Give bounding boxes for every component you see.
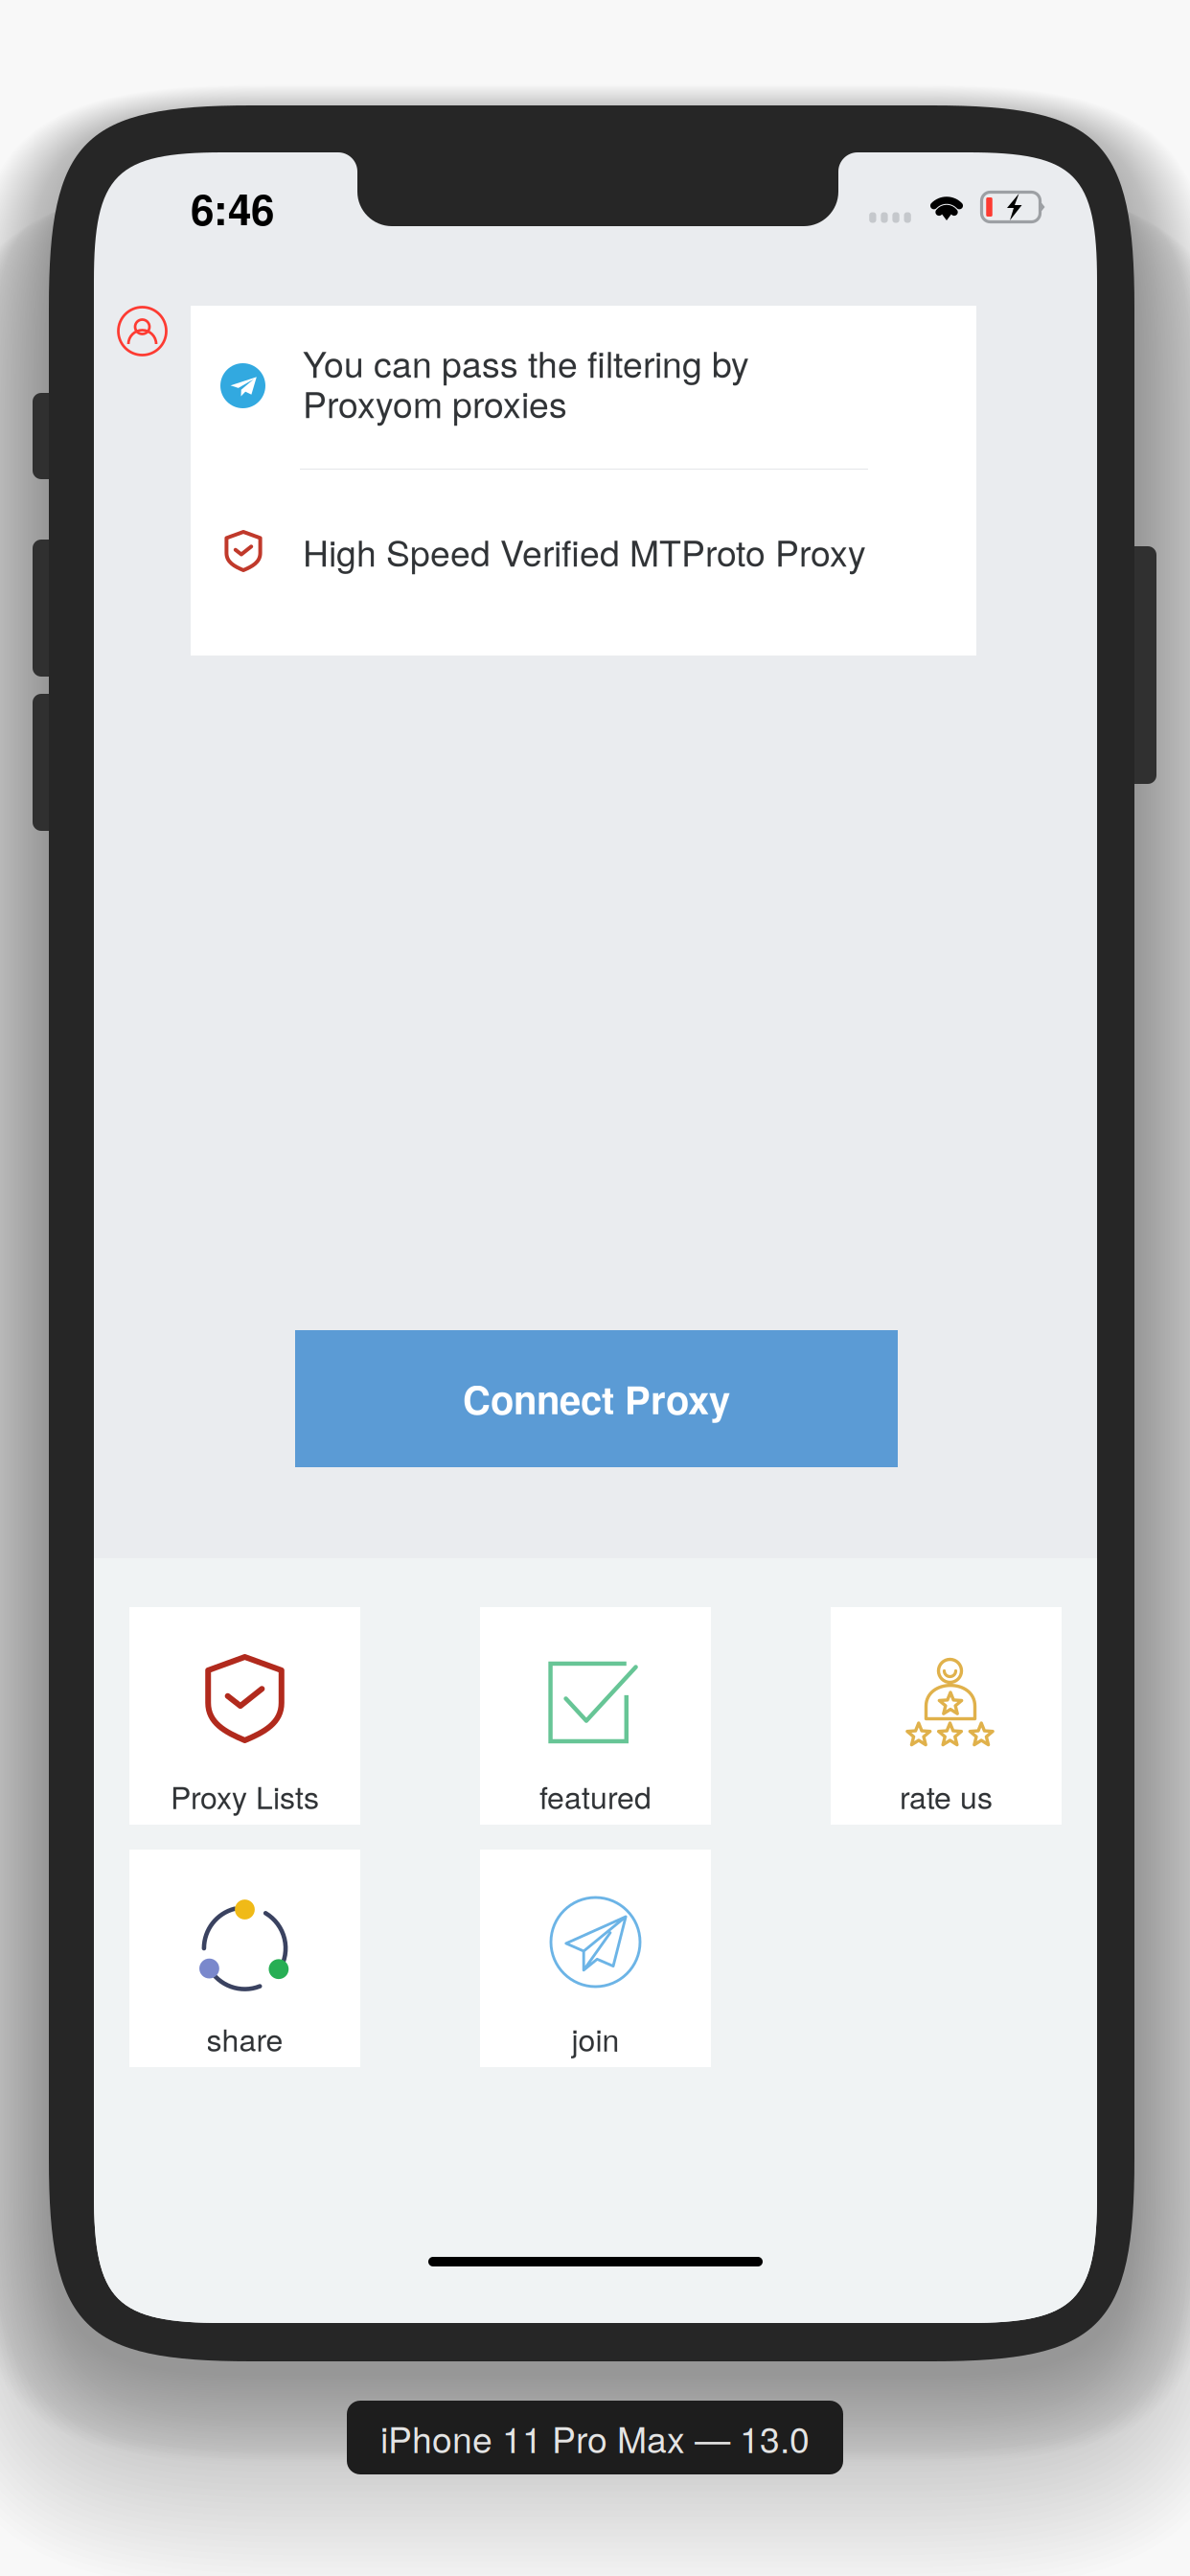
button[interactable]: Connect Proxy	[295, 1330, 898, 1467]
button[interactable]: rate us	[831, 1607, 1062, 1825]
staticText: Proxy Lists	[171, 1774, 319, 1818]
button[interactable]: share	[129, 1850, 360, 2067]
staticText: featured	[539, 1774, 652, 1818]
button[interactable]: Proxy Lists	[129, 1607, 360, 1825]
staticText: Proxyom proxies	[303, 377, 567, 428]
button[interactable]: High Speed Verified MTProto Proxy	[191, 470, 976, 655]
button[interactable]: join	[480, 1850, 711, 2067]
staticText: Connect Proxy	[463, 1371, 730, 1426]
button[interactable]: You can pass the filtering by	[191, 306, 976, 470]
staticText: iPhone 11 Pro Max — 13.0	[380, 2412, 810, 2463]
staticText: High Speed Verified MTProto Proxy	[303, 525, 866, 577]
staticText: join	[572, 2016, 619, 2060]
button[interactable]: Account	[118, 307, 166, 355]
staticText: 6:46	[191, 178, 274, 238]
staticText: You can pass the filtering by	[303, 337, 749, 388]
staticText: rate us	[900, 1774, 993, 1818]
button[interactable]: featured	[480, 1607, 711, 1825]
staticText: share	[206, 2016, 283, 2060]
